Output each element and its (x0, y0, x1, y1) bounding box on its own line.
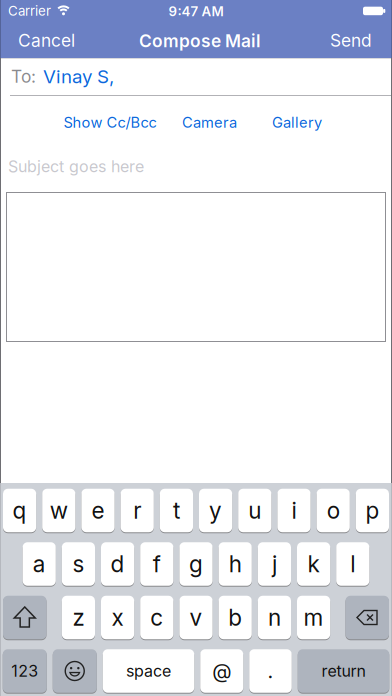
staticText: v (189, 604, 202, 631)
button[interactable]: l (336, 542, 369, 586)
button[interactable]: i (277, 489, 311, 532)
button[interactable]: d (101, 542, 134, 586)
button[interactable]: Subject goes here (0, 147, 392, 186)
staticText: Send (330, 30, 372, 51)
staticText: Carrier (8, 3, 51, 19)
button[interactable]: u (238, 489, 271, 532)
button[interactable]: m (297, 596, 330, 639)
staticText: u (248, 497, 261, 524)
staticText: b (228, 604, 242, 631)
button[interactable]: w (42, 489, 75, 532)
button[interactable]: k (297, 542, 330, 586)
staticText: To: (11, 66, 36, 87)
button[interactable]: j (258, 542, 291, 586)
button[interactable]: 123 (3, 649, 47, 693)
staticText: m (304, 604, 324, 631)
button[interactable]: Send (330, 30, 372, 51)
staticText: l (350, 551, 355, 577)
button[interactable]: x (101, 596, 134, 639)
button[interactable]: b (219, 596, 252, 639)
staticText: 9:47 AM (168, 4, 223, 19)
staticText: j (272, 551, 277, 577)
button[interactable]: z (62, 596, 95, 639)
button[interactable]: return (298, 649, 389, 693)
button[interactable]: Gallery (272, 114, 322, 131)
staticText: z (72, 604, 84, 631)
button[interactable]: f (140, 542, 173, 586)
staticText: Compose Mail (139, 31, 261, 51)
button[interactable] (3, 596, 46, 639)
button[interactable]: e (81, 489, 115, 532)
button[interactable]: v (179, 596, 213, 639)
button[interactable]: y (199, 489, 232, 532)
button[interactable] (53, 649, 97, 693)
button[interactable]: p (356, 489, 389, 532)
staticText: 123 (11, 662, 38, 680)
staticText: i (291, 497, 296, 524)
staticText: Gallery (272, 114, 322, 131)
staticText: return (321, 662, 365, 680)
button[interactable]: t (160, 489, 193, 532)
staticText: t (173, 497, 180, 524)
staticText: a (33, 551, 46, 577)
button[interactable]: Cancel (18, 30, 75, 51)
staticText: g (189, 551, 203, 577)
button[interactable] (0, 186, 392, 342)
staticText: h (229, 551, 242, 577)
button[interactable]: o (317, 489, 350, 532)
staticText: r (133, 497, 141, 524)
staticText: x (112, 604, 124, 631)
staticText: y (209, 497, 222, 524)
button[interactable]: Show Cc/Bcc (63, 114, 156, 131)
staticText: space (126, 662, 171, 680)
staticText: Cancel (18, 30, 75, 51)
staticText: c (150, 604, 163, 631)
staticText: d (111, 551, 125, 577)
staticText: k (308, 551, 320, 577)
button[interactable]: n (258, 596, 291, 639)
button[interactable]: Camera (182, 114, 237, 131)
staticText: e (91, 497, 104, 524)
staticText: f (153, 551, 161, 577)
staticText: Subject goes here (8, 157, 144, 176)
staticText: o (327, 497, 340, 524)
button[interactable]: r (121, 489, 154, 532)
staticText: w (50, 497, 68, 524)
button[interactable]: To: (0, 58, 392, 95)
button[interactable]: g (179, 542, 213, 586)
button[interactable]: . (249, 649, 292, 693)
button[interactable] (345, 596, 389, 639)
staticText: Show Cc/Bcc (63, 114, 156, 131)
button[interactable]: a (23, 542, 56, 586)
button[interactable]: s (62, 542, 95, 586)
staticText: . (267, 659, 273, 683)
staticText: Vinay S, (43, 65, 114, 87)
staticText: Camera (182, 114, 237, 131)
button[interactable]: Vinay S, (36, 65, 114, 87)
staticText: p (365, 497, 379, 524)
button[interactable]: c (140, 596, 173, 639)
button[interactable]: q (3, 489, 36, 532)
button[interactable]: space (103, 649, 194, 693)
button[interactable]: h (219, 542, 252, 586)
staticText: q (13, 497, 27, 524)
staticText: n (268, 604, 281, 631)
staticText: s (72, 551, 84, 577)
staticText: @ (212, 659, 231, 683)
button[interactable]: @ (200, 649, 243, 693)
